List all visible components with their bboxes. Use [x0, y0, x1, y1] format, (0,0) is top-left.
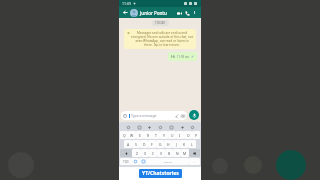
button[interactable]: Clipboard — [179, 124, 185, 130]
staticText: A — [127, 142, 130, 147]
button[interactable]: W — [128, 131, 136, 139]
staticText: W — [130, 133, 134, 138]
staticText: Q — [123, 133, 126, 138]
button[interactable]: G — [156, 140, 164, 148]
button[interactable]: C — [149, 149, 157, 157]
staticText: L — [191, 142, 193, 147]
button[interactable]: S — [132, 140, 140, 148]
staticText: U — [171, 133, 174, 138]
staticText: YT/Chatstories — [142, 170, 179, 177]
button[interactable]: D — [140, 140, 148, 148]
button[interactable]: Theme — [168, 124, 174, 130]
staticText: F — [151, 142, 153, 147]
staticText: English — [164, 160, 173, 163]
button[interactable]: Messages and calls are end-to-end encryp… — [124, 29, 196, 49]
staticText: TODAY — [155, 21, 166, 25]
button[interactable]: Settings — [157, 124, 163, 130]
staticText: B — [168, 151, 171, 156]
staticText: . — [194, 160, 195, 164]
button[interactable]: GIF — [136, 124, 142, 130]
staticText: Messages and calls are end-to-end encryp… — [131, 31, 193, 47]
button[interactable]: U — [168, 131, 176, 139]
staticText: Junior Pontu — [140, 10, 167, 16]
button[interactable]: P — [192, 131, 200, 139]
staticText: N — [176, 151, 179, 156]
button[interactable]: T — [152, 131, 160, 139]
staticText: ?123 — [123, 160, 129, 164]
staticText: H — [167, 142, 170, 147]
button[interactable]: Y — [160, 131, 168, 139]
staticText: V — [160, 151, 163, 156]
staticText: 11:09 — [122, 1, 131, 6]
button[interactable]: Camera — [181, 114, 185, 118]
button[interactable]: J — [172, 140, 180, 148]
button[interactable]: N — [173, 149, 181, 157]
staticText: Z — [136, 151, 138, 156]
button[interactable]: Hi — [168, 52, 197, 61]
button[interactable]: L — [188, 140, 196, 148]
staticText: O — [187, 133, 190, 138]
staticText: D — [143, 142, 146, 147]
button[interactable]: Voice message — [189, 110, 199, 120]
button[interactable]: ?123 — [120, 158, 131, 165]
button[interactable]: V — [157, 149, 165, 157]
staticText: T — [155, 133, 157, 138]
button[interactable]: Attach — [175, 114, 179, 118]
button[interactable]: Language — [139, 158, 147, 165]
button[interactable]: Back — [122, 9, 129, 16]
staticText: Hi — [171, 54, 175, 59]
button[interactable]: H — [164, 140, 172, 148]
button[interactable]: Backspace — [189, 149, 200, 157]
staticText: G — [159, 142, 162, 147]
button[interactable]: Z — [132, 149, 141, 157]
staticText: J — [176, 142, 177, 147]
button[interactable]: E — [136, 131, 144, 139]
button[interactable]: Type a message — [121, 111, 187, 120]
button[interactable]: M — [181, 149, 189, 157]
staticText: K — [183, 142, 186, 147]
button[interactable]: Sticker — [146, 124, 152, 130]
button[interactable]: Video call — [175, 9, 183, 17]
staticText: E — [139, 133, 141, 138]
staticText: I — [179, 133, 181, 138]
staticText: M — [183, 151, 187, 156]
button[interactable]: F — [148, 140, 156, 148]
button[interactable]: R — [144, 131, 152, 139]
button[interactable]: YT/Chatstories — [139, 169, 182, 178]
button[interactable]: More options — [191, 9, 198, 16]
button[interactable]: O — [184, 131, 192, 139]
button[interactable]: Emoji — [131, 158, 139, 165]
button[interactable]: . — [189, 158, 200, 165]
staticText: R — [147, 133, 150, 138]
button[interactable]: K — [180, 140, 188, 148]
button[interactable]: Space — [147, 158, 189, 165]
staticText: Y — [163, 133, 165, 138]
button[interactable]: I — [176, 131, 184, 139]
button[interactable]: Voice call — [183, 9, 191, 17]
button[interactable]: Q — [120, 131, 128, 139]
staticText: X — [144, 151, 146, 156]
staticText: P — [195, 133, 198, 138]
staticText: S — [135, 142, 137, 147]
staticText: Type a message — [131, 113, 157, 118]
button[interactable]: X — [141, 149, 149, 157]
button[interactable]: A — [124, 140, 132, 148]
button[interactable]: Shift — [120, 149, 132, 157]
staticText: 11:09 am — [177, 55, 190, 59]
button[interactable]: More — [189, 124, 195, 130]
staticText: C — [152, 151, 155, 156]
button[interactable]: B — [165, 149, 173, 157]
button[interactable]: Profile photo — [130, 9, 138, 17]
button[interactable]: Search — [125, 124, 131, 130]
